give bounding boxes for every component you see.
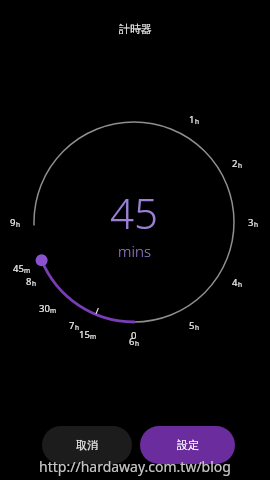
staticText: 8	[26, 275, 32, 288]
staticText: 取消	[76, 438, 98, 452]
staticText: 45	[13, 262, 24, 275]
staticText: 計時器	[119, 22, 152, 36]
staticText: h	[135, 339, 140, 348]
staticText: 30	[39, 302, 50, 315]
staticText: 15	[79, 328, 90, 341]
staticText: m	[24, 266, 31, 275]
staticText: mins	[118, 241, 151, 261]
staticText: 5	[189, 319, 195, 332]
staticText: h	[195, 117, 200, 126]
staticText: m	[90, 332, 97, 341]
staticText: h	[238, 280, 243, 289]
staticText: m	[50, 306, 57, 315]
staticText: h	[238, 161, 243, 170]
button[interactable]: 設定	[140, 426, 235, 464]
staticText: h	[75, 323, 80, 332]
staticText: 0	[131, 329, 137, 342]
staticText: 2	[232, 157, 238, 170]
staticText: http://hardaway.com.tw/blog	[39, 457, 231, 476]
staticText: 45	[110, 184, 158, 241]
staticText: 6	[129, 335, 135, 348]
staticText: h	[254, 220, 259, 229]
staticText: h	[32, 279, 37, 288]
staticText: 9	[10, 216, 16, 229]
button[interactable]: 取消	[42, 426, 132, 464]
staticText: h	[195, 323, 200, 332]
staticText: 3	[248, 216, 254, 229]
staticText: h	[16, 220, 21, 229]
staticText: 7	[69, 319, 75, 332]
staticText: 4	[232, 276, 238, 289]
staticText: 1	[189, 113, 195, 126]
staticText: 設定	[177, 438, 199, 452]
